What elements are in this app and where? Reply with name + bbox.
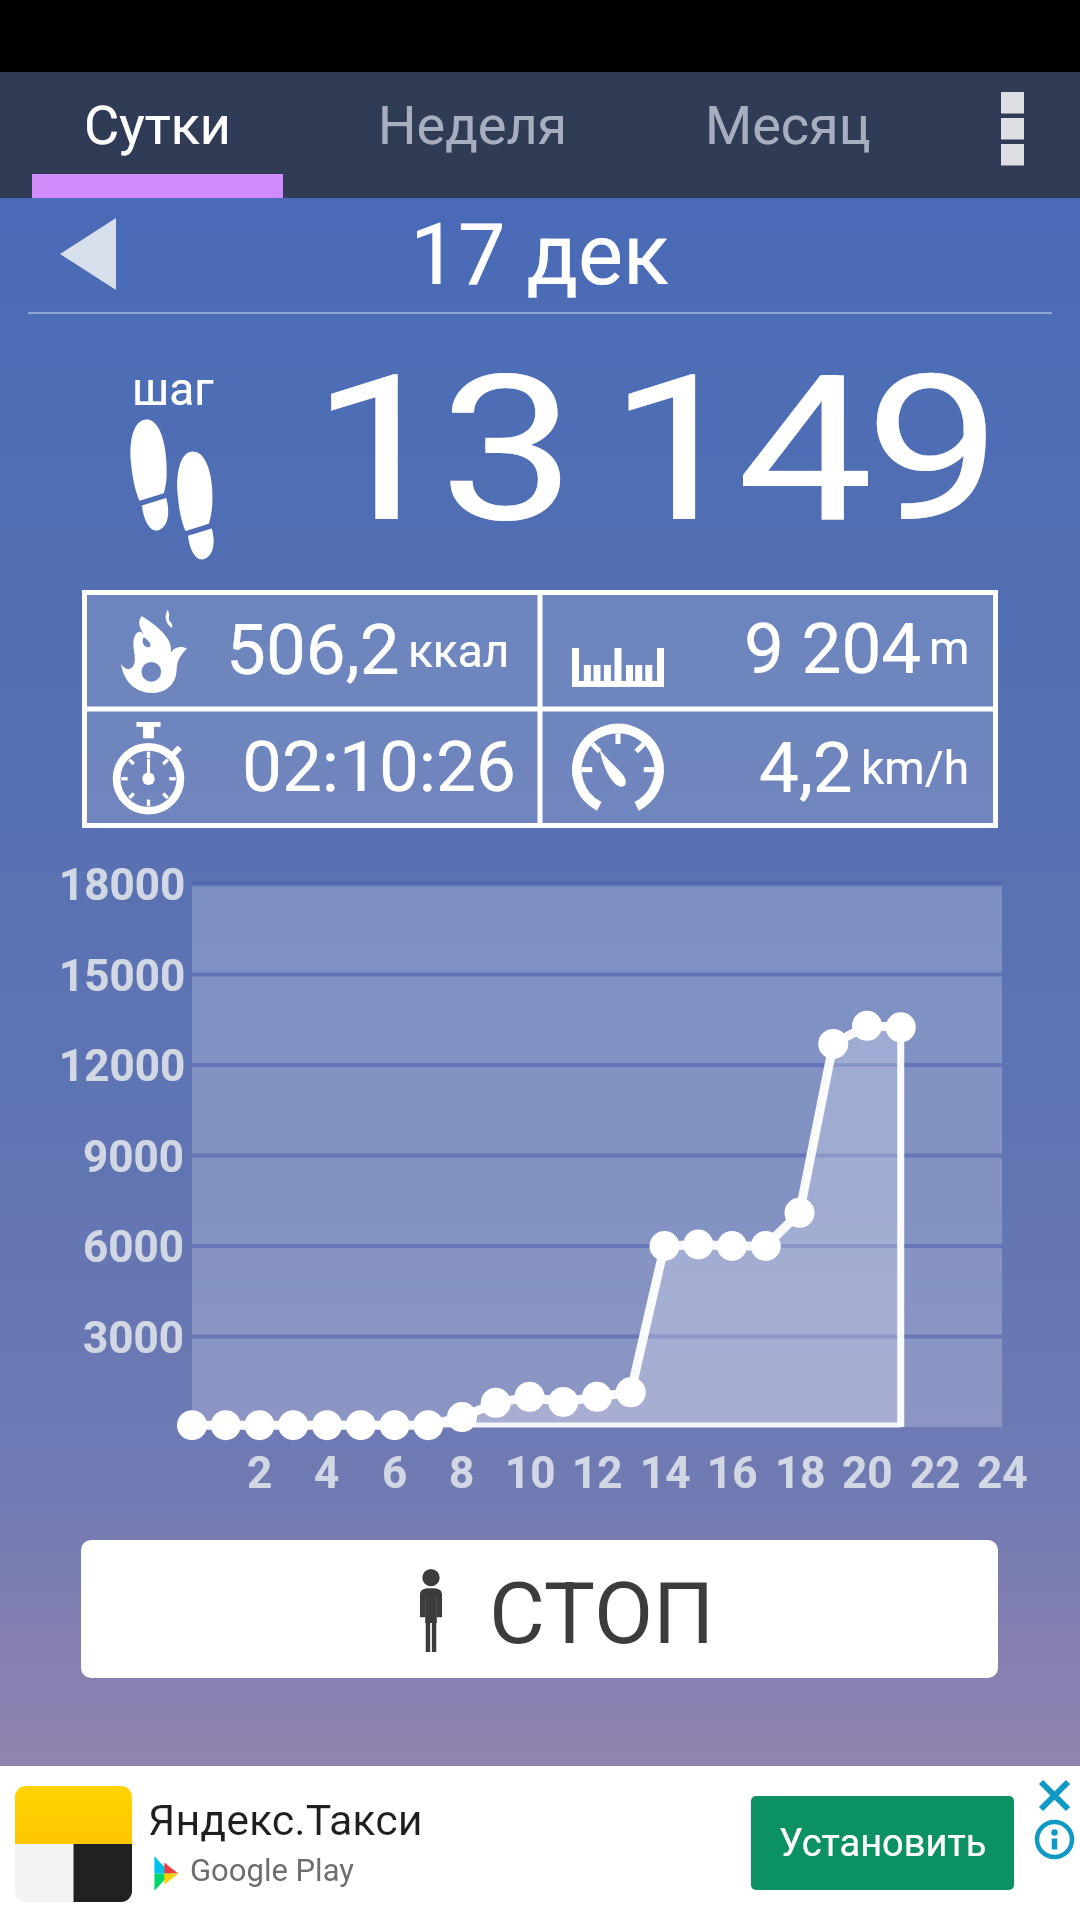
- button[interactable]: Сутки: [0, 72, 315, 198]
- staticText: 15000: [59, 950, 186, 1002]
- staticText: 6000: [83, 1221, 184, 1273]
- button[interactable]: Месяц: [630, 72, 945, 198]
- staticText: 22: [910, 1447, 961, 1499]
- button[interactable]: Установить: [751, 1796, 1014, 1890]
- staticText: 9000: [83, 1131, 184, 1183]
- staticText: 18: [775, 1447, 826, 1499]
- staticText: Яндекс.Такси: [148, 1795, 423, 1845]
- staticText: 20: [842, 1447, 893, 1499]
- staticText: km/h: [861, 741, 969, 795]
- staticText: 02:10:26: [242, 725, 516, 808]
- staticText: Google Play: [190, 1852, 354, 1888]
- button[interactable]: [540, 709, 998, 828]
- staticText: ккал: [408, 624, 510, 678]
- staticText: 506,2: [226, 608, 400, 691]
- staticText: СТОП: [489, 1563, 715, 1664]
- button[interactable]: [540, 590, 998, 709]
- staticText: Установить: [779, 1821, 987, 1866]
- button[interactable]: Previous day: [34, 204, 142, 304]
- staticText: Сутки: [84, 94, 232, 157]
- button[interactable]: СТОП: [81, 1540, 998, 1678]
- staticText: 16: [707, 1447, 758, 1499]
- staticText: 6: [382, 1447, 408, 1499]
- staticText: 4,2: [759, 726, 853, 809]
- staticText: 3000: [83, 1312, 184, 1364]
- button[interactable]: Ad info: [1031, 1816, 1078, 1863]
- button[interactable]: [82, 709, 540, 828]
- staticText: 8: [449, 1447, 475, 1499]
- button[interactable]: Close ad: [1031, 1772, 1078, 1819]
- staticText: m: [929, 621, 970, 675]
- button[interactable]: [82, 590, 540, 709]
- staticText: 12: [572, 1447, 623, 1499]
- staticText: 10: [505, 1447, 556, 1499]
- staticText: Месяц: [705, 94, 871, 157]
- staticText: шаг: [132, 362, 214, 416]
- staticText: 2: [247, 1447, 273, 1499]
- staticText: 18000: [59, 859, 186, 911]
- button[interactable]: More options: [945, 72, 1080, 198]
- staticText: 12000: [59, 1040, 186, 1092]
- staticText: 13 149: [311, 331, 993, 569]
- button[interactable]: Неделя: [315, 72, 630, 198]
- staticText: 9 204: [744, 607, 922, 690]
- staticText: 14: [640, 1447, 691, 1499]
- staticText: 24: [977, 1447, 1028, 1499]
- staticText: Неделя: [378, 94, 568, 157]
- staticText: 17 дек: [410, 205, 669, 305]
- staticText: 4: [314, 1447, 340, 1499]
